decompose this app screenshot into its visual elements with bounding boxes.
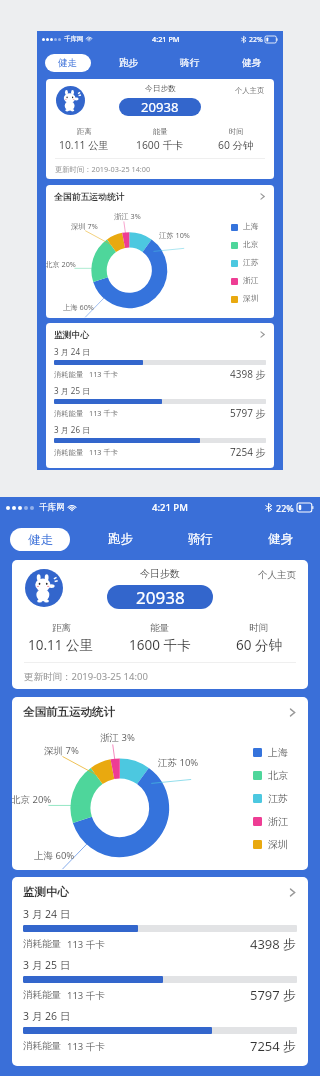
- staticText: 千库网: [39, 502, 65, 513]
- staticText: 上海 60%: [63, 302, 94, 312]
- button[interactable]: 江苏: [231, 258, 259, 268]
- staticText: 20938: [141, 98, 179, 116]
- button[interactable]: 跑步: [98, 47, 159, 79]
- button[interactable]: 个人主页: [235, 86, 265, 95]
- staticText: 深圳 7%: [44, 744, 79, 757]
- button[interactable]: 浙江: [253, 815, 288, 828]
- button[interactable]: 北京: [253, 769, 288, 782]
- staticText: 能量: [153, 127, 168, 136]
- staticText: 健走: [58, 57, 78, 69]
- staticText: 健身: [268, 531, 293, 547]
- staticText: 3 月 26 日: [23, 1009, 71, 1023]
- staticText: 5797 步: [230, 406, 266, 420]
- staticText: 距离: [52, 622, 71, 634]
- staticText: 深圳: [243, 294, 259, 304]
- button[interactable]: 上海: [253, 746, 288, 759]
- staticText: 3 月 25 日: [54, 385, 91, 396]
- staticText: 跑步: [119, 57, 139, 69]
- staticText: 消耗能量: [54, 409, 84, 418]
- staticText: 骑行: [180, 57, 200, 69]
- staticText: 113 千卡: [67, 1040, 105, 1053]
- staticText: 能量: [150, 622, 169, 634]
- staticText: 7254 步: [250, 1037, 297, 1055]
- staticText: 浙江: [243, 276, 259, 286]
- staticText: 时间: [229, 127, 244, 136]
- staticText: 60 分钟: [218, 138, 254, 152]
- staticText: 健身: [242, 57, 262, 69]
- button[interactable]: 骑行: [159, 47, 221, 79]
- staticText: 113 千卡: [89, 408, 119, 418]
- staticText: 113 千卡: [67, 938, 105, 951]
- button[interactable]: 深圳: [253, 838, 288, 851]
- staticText: 个人主页: [235, 86, 265, 95]
- staticText: 距离: [77, 127, 92, 136]
- staticText: 上海: [243, 222, 259, 232]
- staticText: 1600 千卡: [136, 138, 184, 152]
- staticText: 更新时间：2019-03-25 14:00: [55, 164, 151, 174]
- staticText: 10.11 公里: [59, 138, 109, 152]
- staticText: 3 月 24 日: [54, 346, 91, 357]
- button[interactable]: 20938: [107, 585, 213, 609]
- staticText: 北京: [243, 240, 259, 250]
- staticText: 北京: [268, 769, 288, 782]
- staticText: 健走: [28, 532, 53, 548]
- staticText: 今日步数: [145, 84, 176, 94]
- staticText: 今日步数: [140, 567, 180, 580]
- staticText: 消耗能量: [54, 448, 84, 457]
- staticText: 3 月 25 日: [23, 958, 71, 972]
- staticText: 1600 千卡: [129, 636, 191, 654]
- staticText: 跑步: [108, 531, 133, 547]
- staticText: 江苏 10%: [158, 756, 199, 769]
- staticText: 骑行: [188, 531, 213, 547]
- staticText: 4398 步: [250, 935, 297, 953]
- staticText: 113 千卡: [89, 447, 119, 457]
- staticText: 4:21 PM: [152, 34, 180, 44]
- button[interactable]: Avatar: [25, 569, 63, 607]
- staticText: 监测中心: [23, 885, 69, 899]
- staticText: 北京 20%: [12, 793, 52, 806]
- staticText: 4:21 PM: [152, 501, 188, 514]
- staticText: 全国前五运动统计: [23, 705, 115, 719]
- button[interactable]: 健身: [221, 47, 283, 79]
- staticText: 4398 步: [230, 367, 266, 381]
- staticText: 江苏: [268, 792, 288, 805]
- staticText: 上海: [268, 746, 288, 759]
- button[interactable]: 个人主页: [258, 569, 296, 581]
- staticText: 浙江 3%: [114, 211, 141, 221]
- staticText: 时间: [249, 622, 268, 634]
- staticText: 3 月 24 日: [23, 907, 71, 921]
- staticText: 113 千卡: [89, 369, 119, 379]
- button[interactable]: Avatar: [56, 86, 85, 115]
- button[interactable]: 监测中心: [12, 877, 308, 907]
- button[interactable]: 健身: [240, 518, 320, 560]
- button[interactable]: 上海: [231, 222, 259, 232]
- staticText: 消耗能量: [23, 989, 61, 1001]
- staticText: 千库网: [64, 35, 84, 43]
- button[interactable]: 江苏: [253, 792, 288, 805]
- button[interactable]: 骑行: [160, 518, 240, 560]
- button[interactable]: 全国前五运动统计: [12, 697, 308, 727]
- button[interactable]: 健走: [0, 518, 80, 560]
- button[interactable]: 全国前五运动统计: [46, 185, 274, 208]
- button[interactable]: 健走: [37, 47, 98, 79]
- staticText: 深圳: [268, 838, 288, 851]
- staticText: 消耗能量: [23, 1040, 61, 1052]
- button[interactable]: 浙江: [231, 276, 259, 286]
- staticText: 20938: [136, 586, 185, 609]
- button[interactable]: 深圳: [231, 294, 259, 304]
- staticText: 22%: [249, 35, 263, 44]
- staticText: 深圳 7%: [71, 221, 98, 231]
- staticText: 个人主页: [258, 569, 296, 581]
- staticText: 10.11 公里: [28, 636, 94, 654]
- button[interactable]: 监测中心: [46, 323, 274, 346]
- staticText: 22%: [276, 502, 294, 514]
- staticText: 5797 步: [250, 986, 297, 1004]
- staticText: 消耗能量: [23, 938, 61, 950]
- button[interactable]: 跑步: [80, 518, 160, 560]
- button[interactable]: 北京: [231, 240, 259, 250]
- staticText: 江苏 10%: [159, 230, 190, 240]
- staticText: 浙江 3%: [100, 731, 135, 744]
- staticText: 上海 60%: [34, 849, 75, 862]
- staticText: 监测中心: [54, 329, 90, 340]
- button[interactable]: 20938: [119, 98, 201, 116]
